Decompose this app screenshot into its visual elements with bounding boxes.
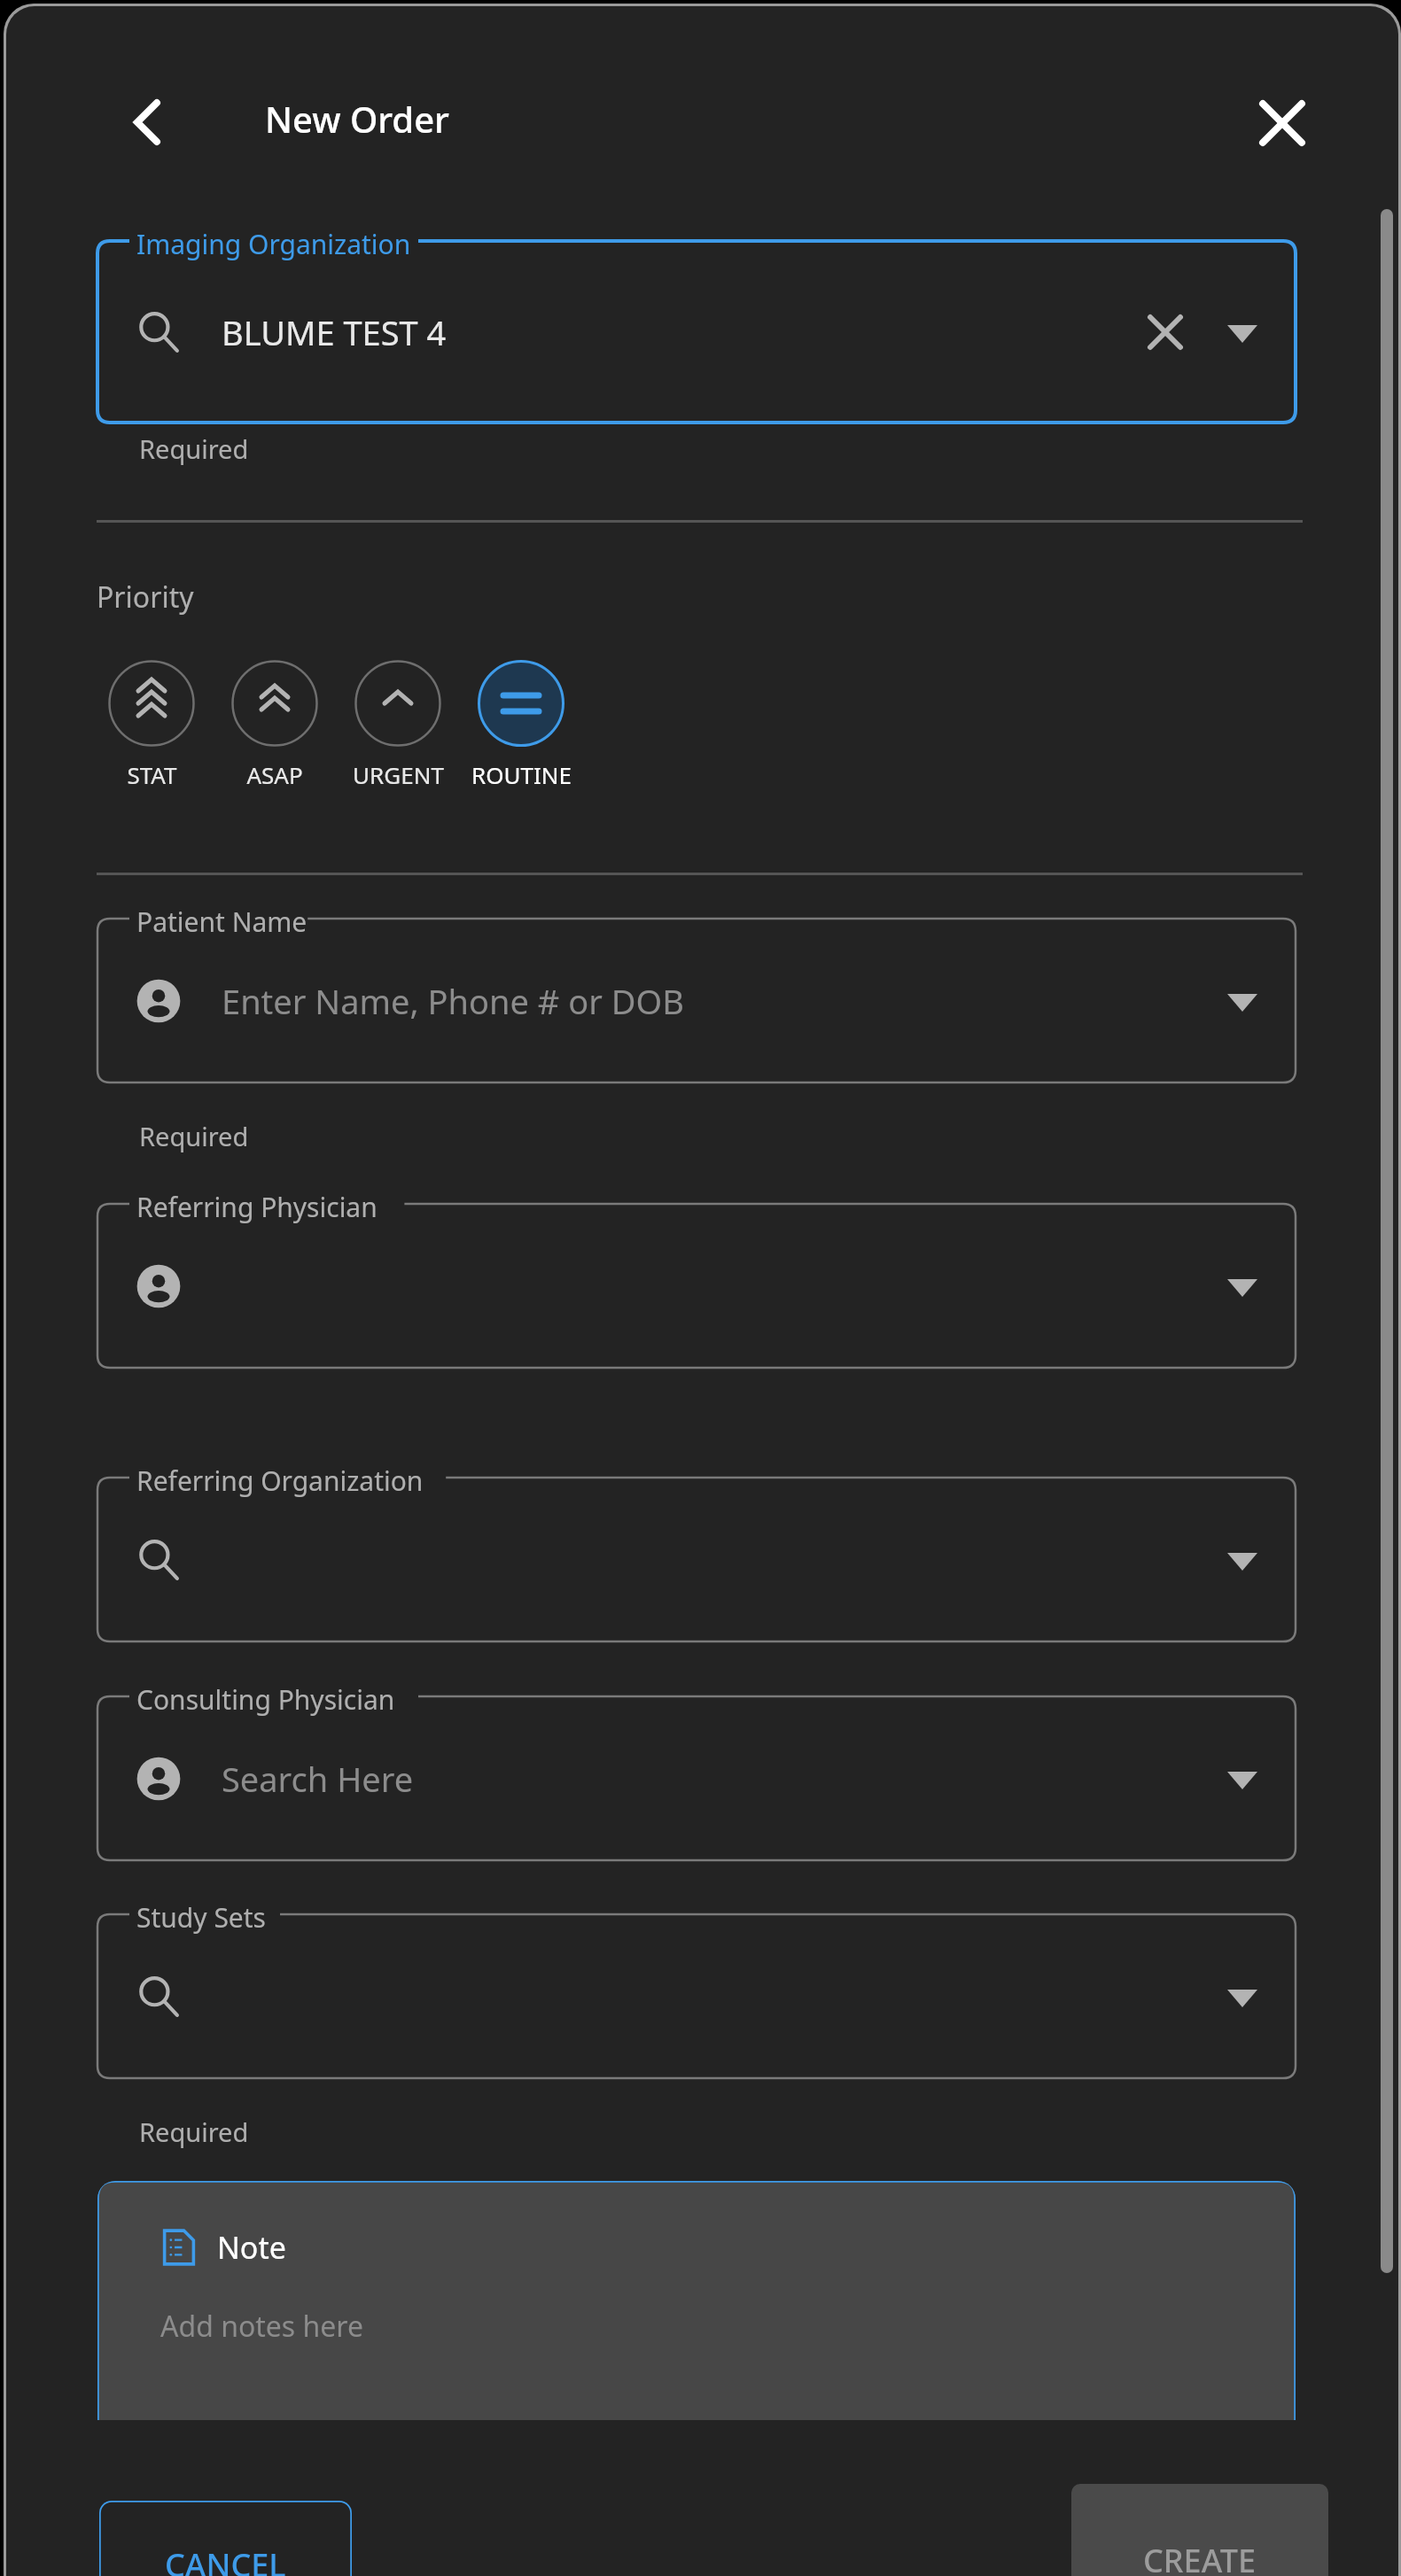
staticText: Referring Organization: [136, 1463, 424, 1499]
staticText: CANCEL: [165, 2543, 286, 2576]
staticText: Required: [139, 431, 249, 466]
staticText: ROUTINE: [471, 759, 572, 790]
staticText: Enter Name, Phone # or DOB: [222, 978, 684, 1024]
button[interactable]: Note: [97, 2181, 1296, 2420]
staticText: STAT: [127, 759, 177, 790]
button[interactable]: BLUME TEST 4: [97, 241, 1296, 423]
button[interactable]: ASAP: [220, 660, 330, 790]
staticText: Search Here: [222, 1756, 414, 1802]
button[interactable]: Show options: [1218, 976, 1267, 1026]
button[interactable]: Back: [113, 88, 182, 157]
button[interactable]: Show options: [1218, 307, 1267, 357]
button[interactable]: Show options: [1218, 1261, 1267, 1311]
button[interactable]: Show options: [97, 1204, 1296, 1368]
staticText: CREATE: [1143, 2539, 1257, 2576]
button[interactable]: Search Here: [97, 1696, 1296, 1860]
staticText: Consulting Physician: [136, 1681, 395, 1718]
staticText: Referring Physician: [136, 1189, 377, 1225]
button[interactable]: Show options: [1218, 1535, 1267, 1585]
staticText: Imaging Organization: [136, 226, 411, 262]
staticText: Note: [217, 2227, 286, 2268]
staticText: Add notes here: [160, 2307, 363, 2346]
button[interactable]: STAT: [97, 660, 206, 790]
staticText: ASAP: [246, 759, 303, 790]
button[interactable]: Show options: [1218, 1972, 1267, 2021]
button[interactable]: Show options: [97, 1914, 1296, 2078]
staticText: Required: [139, 1119, 249, 1153]
button[interactable]: Close: [1247, 88, 1318, 159]
staticText: New Order: [265, 95, 450, 143]
button[interactable]: Clear: [1136, 303, 1195, 361]
button[interactable]: Show options: [97, 1478, 1296, 1641]
staticText: BLUME TEST 4: [222, 309, 447, 355]
staticText: Priority: [97, 578, 194, 617]
button[interactable]: URGENT: [343, 660, 453, 790]
staticText: Required: [139, 2114, 249, 2149]
staticText: URGENT: [353, 759, 444, 790]
staticText: Patient Name: [136, 904, 307, 940]
button[interactable]: ROUTINE: [466, 660, 576, 790]
staticText: Study Sets: [136, 1899, 266, 1936]
button[interactable]: CREATE: [1071, 2484, 1328, 2576]
button[interactable]: Enter Name, Phone # or DOB: [97, 919, 1296, 1082]
button[interactable]: CANCEL: [99, 2501, 352, 2576]
button[interactable]: Show options: [1218, 1754, 1267, 1804]
